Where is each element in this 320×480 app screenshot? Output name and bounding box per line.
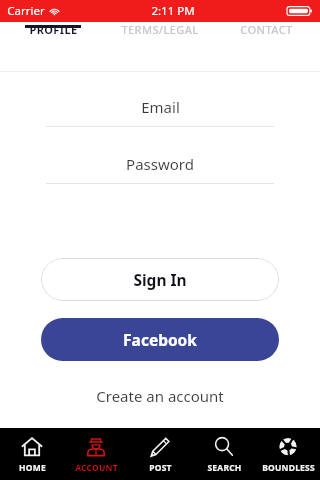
staticText: POST xyxy=(149,462,172,474)
staticText: CONTACT xyxy=(240,22,293,37)
staticText: HOME xyxy=(19,462,46,474)
staticText: Email xyxy=(141,97,180,117)
button[interactable]: Sign In xyxy=(41,258,279,301)
button[interactable]: Password xyxy=(0,145,320,184)
staticText: BOUNDLESS xyxy=(262,462,315,474)
staticText: ACCOUNT xyxy=(75,462,118,474)
button[interactable]: Facebook xyxy=(41,318,279,361)
button[interactable]: PROFILE xyxy=(0,22,106,37)
staticText: Password xyxy=(126,154,194,174)
staticText: Sign In xyxy=(133,269,187,290)
staticText: TERMS/LEGAL xyxy=(121,22,199,37)
staticText: 2:11 PM xyxy=(151,3,195,19)
staticText: Facebook xyxy=(123,329,197,350)
button[interactable]: POST xyxy=(128,429,192,479)
button[interactable]: Email xyxy=(0,88,320,127)
staticText: PROFILE xyxy=(29,22,78,37)
button[interactable]: SEARCH xyxy=(192,429,256,479)
button[interactable]: ACCOUNT xyxy=(64,429,128,479)
button[interactable]: CONTACT xyxy=(213,22,320,37)
staticText: Carrier xyxy=(7,3,45,19)
staticText: Create an account xyxy=(96,386,224,406)
button[interactable]: TERMS/LEGAL xyxy=(106,22,213,37)
button[interactable]: HOME xyxy=(0,429,64,479)
button[interactable]: Create an account xyxy=(0,383,320,409)
button[interactable]: BOUNDLESS xyxy=(256,429,320,479)
staticText: SEARCH xyxy=(207,462,242,474)
